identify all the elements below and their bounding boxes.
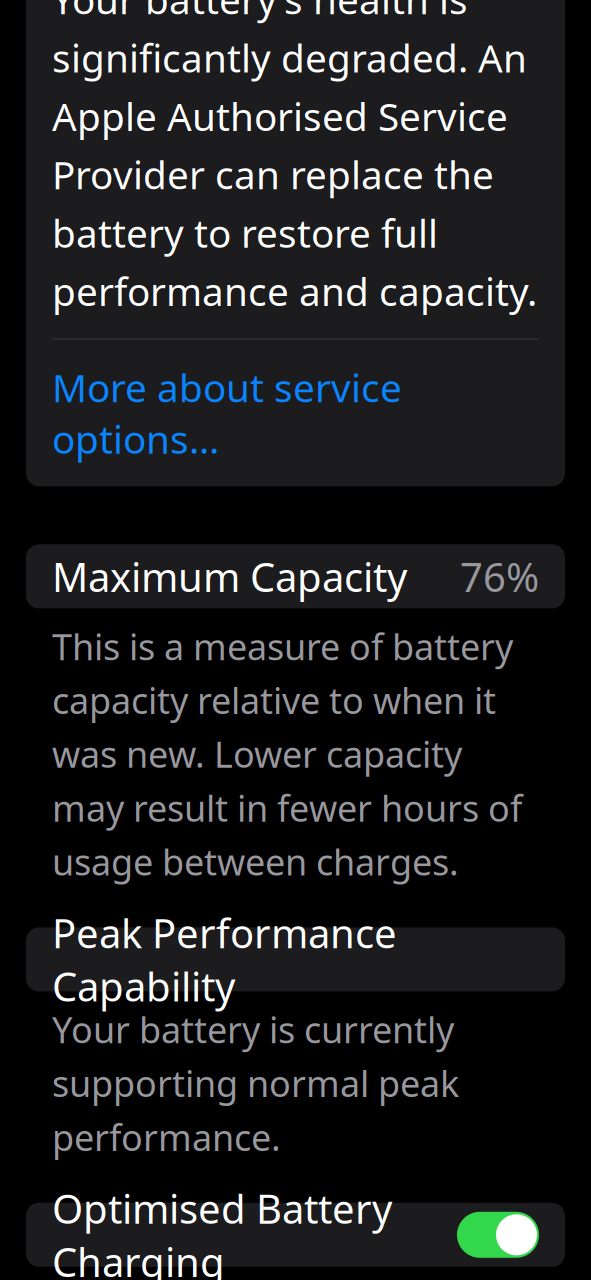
staticText: Optimised Battery Charging <box>52 1182 392 1280</box>
button[interactable]: More about service options... <box>52 340 539 486</box>
staticText: Maximum Capacity <box>52 550 407 603</box>
staticText: More about service options... <box>52 362 402 464</box>
button[interactable]: Optimised Battery Charging <box>457 1212 539 1258</box>
staticText: 76% <box>460 550 539 603</box>
staticText: Your battery is currently supporting nor… <box>52 1005 459 1161</box>
staticText: Peak Performance Capability <box>52 906 397 1012</box>
staticText: This is a measure of battery capacity re… <box>52 622 522 885</box>
staticText: Your battery’s health is significantly d… <box>52 0 537 317</box>
